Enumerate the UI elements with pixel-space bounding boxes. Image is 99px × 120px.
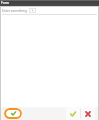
staticText: Form [1,1,9,5]
button[interactable]: Cancel [81,107,95,120]
button[interactable]: Input [29,8,36,13]
staticText: Enter something [2,9,27,13]
button[interactable]: Form [0,0,99,6]
button[interactable]: Accept [66,107,80,120]
button[interactable]: New [4,108,22,119]
